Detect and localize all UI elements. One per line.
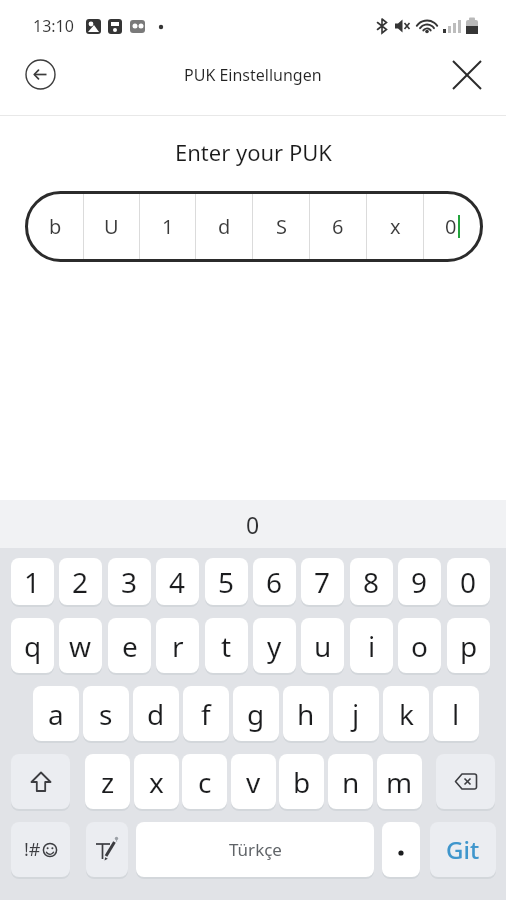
button[interactable]: n	[328, 754, 373, 809]
staticText: 6	[266, 563, 283, 601]
staticText: d	[218, 213, 231, 240]
button[interactable]	[447, 55, 487, 95]
staticText: !#	[24, 837, 41, 862]
button[interactable]: k	[383, 686, 429, 741]
staticText: 2	[72, 563, 89, 601]
staticText: 9	[411, 563, 428, 601]
button[interactable]: o	[398, 618, 441, 673]
staticText: y	[267, 627, 282, 665]
staticText: 4	[169, 563, 186, 601]
button[interactable]: d	[133, 686, 179, 741]
button[interactable]	[22, 56, 58, 92]
button[interactable]: s	[83, 686, 129, 741]
button[interactable]	[436, 754, 495, 809]
staticText: x	[149, 763, 164, 801]
staticText: i	[368, 627, 376, 665]
staticText: 6	[332, 213, 344, 240]
staticText: 0	[445, 213, 457, 240]
staticText: k	[399, 695, 414, 733]
staticText: U	[104, 213, 119, 240]
staticText: l	[452, 695, 460, 733]
staticText: m	[386, 763, 413, 801]
button[interactable]: 5	[205, 558, 248, 605]
button[interactable]: 2	[59, 558, 102, 605]
staticText: 5	[218, 563, 235, 601]
staticText: PUK Einstellungen	[184, 64, 322, 86]
button[interactable]: 7	[301, 558, 344, 605]
button[interactable]: r	[156, 618, 199, 673]
button[interactable]: b	[25, 191, 483, 262]
staticText: f	[201, 695, 211, 733]
button[interactable]: f	[183, 686, 229, 741]
button[interactable]: e	[108, 618, 151, 673]
button[interactable]: 1	[11, 558, 54, 605]
staticText: u	[314, 627, 332, 665]
staticText: v	[246, 763, 261, 801]
staticText: 0	[246, 509, 260, 540]
button[interactable]	[11, 754, 70, 809]
staticText: 3	[121, 563, 138, 601]
staticText: o	[411, 627, 428, 665]
staticText: 1	[24, 563, 41, 601]
staticText: r	[172, 627, 184, 665]
staticText: b	[49, 213, 62, 240]
staticText: d	[147, 695, 165, 733]
staticText: 1	[162, 213, 174, 240]
button[interactable]: c	[182, 754, 227, 809]
staticText: h	[297, 695, 315, 733]
button[interactable]: h	[283, 686, 329, 741]
staticText: w	[69, 627, 92, 665]
staticText: 0	[460, 563, 477, 601]
button[interactable]: 9	[398, 558, 441, 605]
button[interactable]: v	[231, 754, 276, 809]
button[interactable]: 6	[253, 558, 296, 605]
button[interactable]: p	[447, 618, 490, 673]
button[interactable]: Türkçe	[136, 822, 374, 877]
staticText: j	[352, 695, 360, 733]
staticText: t	[221, 627, 232, 665]
button[interactable]: !#	[11, 822, 70, 877]
staticText: p	[460, 627, 478, 665]
button[interactable]: Git	[430, 822, 496, 877]
button[interactable]: 8	[350, 558, 393, 605]
button[interactable]: w	[59, 618, 102, 673]
button[interactable]: 3	[108, 558, 151, 605]
button[interactable]: g	[233, 686, 279, 741]
staticText: q	[24, 627, 42, 665]
button[interactable]: m	[377, 754, 422, 809]
staticText: Enter your PUK	[175, 137, 332, 167]
staticText: 13:10	[33, 15, 74, 37]
button[interactable]	[382, 822, 420, 877]
staticText: a	[48, 695, 64, 733]
staticText: Türkçe	[229, 838, 282, 861]
button[interactable]: x	[134, 754, 179, 809]
staticText: s	[99, 695, 113, 733]
staticText: 8	[363, 563, 380, 601]
staticText: Git	[446, 833, 480, 866]
staticText: c	[198, 763, 212, 801]
staticText: b	[293, 763, 311, 801]
staticText: S	[276, 213, 287, 240]
staticText: z	[101, 763, 115, 801]
button[interactable]: i	[350, 618, 393, 673]
staticText: g	[247, 695, 265, 733]
staticText: 7	[314, 563, 331, 601]
button[interactable]: q	[11, 618, 54, 673]
button[interactable]: t	[205, 618, 248, 673]
button[interactable]: l	[433, 686, 479, 741]
button[interactable]: z	[85, 754, 130, 809]
button[interactable]: b	[279, 754, 324, 809]
staticText: x	[390, 213, 401, 240]
button[interactable]: j	[333, 686, 379, 741]
button[interactable]: y	[253, 618, 296, 673]
staticText: n	[342, 763, 360, 801]
button[interactable]	[86, 822, 128, 877]
button[interactable]: u	[301, 618, 344, 673]
staticText: e	[122, 627, 138, 665]
button[interactable]: 4	[156, 558, 199, 605]
button[interactable]: a	[33, 686, 79, 741]
button[interactable]: 0	[447, 558, 490, 605]
